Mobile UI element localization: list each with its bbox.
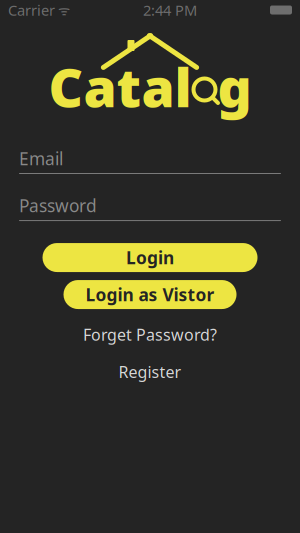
staticText: Login [126, 246, 174, 269]
button[interactable]: Login as Vistor [63, 280, 236, 309]
button[interactable]: Forget Password? [73, 321, 227, 348]
staticText: g [217, 51, 251, 122]
staticText: ᯤ [55, 1, 70, 19]
staticText: Carrier [8, 0, 55, 20]
staticText: Forget Password? [83, 324, 217, 345]
staticText: Login as Vistor [85, 283, 214, 306]
button[interactable]: Register [108, 358, 191, 385]
staticText: Register [118, 361, 181, 382]
staticText: Catal [48, 51, 191, 122]
staticText: Password [19, 194, 97, 217]
button[interactable]: Login [42, 243, 257, 272]
staticText: 2:44 PM [143, 0, 197, 20]
staticText: Email [19, 147, 63, 170]
